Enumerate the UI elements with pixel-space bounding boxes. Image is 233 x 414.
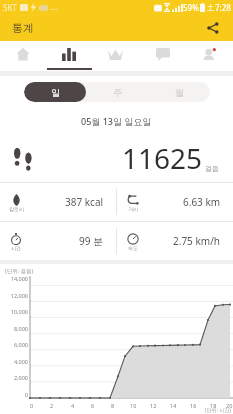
staticText: 주 bbox=[113, 87, 122, 98]
button[interactable]: 속도 bbox=[117, 222, 233, 260]
staticText: 통계 bbox=[12, 21, 34, 35]
staticText: 4,000 bbox=[13, 358, 28, 365]
staticText: 土 bbox=[207, 3, 214, 12]
staticText: 2.75 km/h bbox=[173, 234, 221, 248]
button[interactable]: Home bbox=[0, 41, 46, 71]
button[interactable]: 주 bbox=[86, 82, 148, 102]
staticText: 20 bbox=[226, 402, 233, 409]
staticText: 7:28 bbox=[215, 2, 231, 13]
staticText: 14,000 bbox=[10, 275, 28, 282]
button[interactable]: Profile bbox=[186, 41, 233, 71]
staticText: 6 bbox=[91, 402, 95, 409]
button[interactable]: 시간 bbox=[0, 222, 116, 260]
staticText: 59% bbox=[183, 2, 199, 13]
button[interactable]: Ranking bbox=[92, 41, 139, 71]
staticText: .... bbox=[50, 3, 58, 13]
staticText: 속도 bbox=[128, 245, 138, 251]
staticText: 6,000 bbox=[13, 341, 28, 348]
staticText: 8,000 bbox=[13, 325, 28, 332]
staticText: 걸음 bbox=[205, 164, 219, 173]
staticText: 0 bbox=[30, 402, 34, 409]
staticText: (단위: 걸음) bbox=[5, 267, 34, 275]
staticText: 18 bbox=[210, 402, 217, 409]
staticText: 0 bbox=[24, 391, 28, 398]
staticText: 2,000 bbox=[13, 374, 28, 381]
staticText: 11625 bbox=[122, 139, 203, 177]
staticText: 10,000 bbox=[10, 308, 28, 315]
staticText: 05월 13일 일요일 bbox=[81, 115, 152, 127]
staticText: 4 bbox=[71, 402, 75, 409]
button[interactable]: Share bbox=[202, 17, 224, 39]
staticText: 월 bbox=[175, 87, 184, 98]
staticText: 99 분 bbox=[79, 234, 104, 248]
staticText: 16 bbox=[190, 402, 197, 409]
staticText: 2 bbox=[50, 402, 54, 409]
button[interactable]: Statistics bbox=[46, 41, 92, 71]
staticText: (단위: 시간) bbox=[205, 407, 231, 414]
button[interactable]: 11625 bbox=[0, 134, 233, 182]
staticText: 387 kcal bbox=[65, 195, 104, 209]
staticText: 12,000 bbox=[10, 292, 28, 299]
staticText: 8 bbox=[111, 402, 115, 409]
staticText: 12 bbox=[150, 402, 157, 409]
button[interactable]: 일 bbox=[24, 82, 86, 102]
button[interactable]: 거리 bbox=[117, 183, 233, 221]
staticText: 칼로리 bbox=[9, 206, 24, 212]
staticText: 거리 bbox=[128, 206, 138, 212]
button[interactable]: 월 bbox=[148, 82, 210, 102]
button[interactable]: 칼로리 bbox=[0, 183, 116, 221]
staticText: SKT bbox=[3, 2, 17, 13]
button[interactable]: Messages bbox=[139, 41, 186, 71]
staticText: 6.63 km bbox=[183, 195, 221, 209]
staticText: 14 bbox=[170, 402, 177, 409]
staticText: 시간 bbox=[11, 245, 21, 251]
staticText: 10 bbox=[130, 402, 137, 409]
staticText: 일 bbox=[51, 87, 60, 98]
